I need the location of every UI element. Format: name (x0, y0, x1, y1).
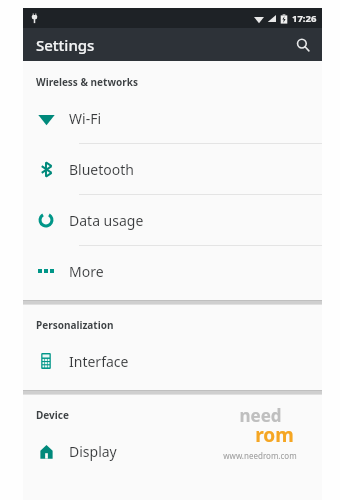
button[interactable]: Search (288, 30, 318, 60)
staticText: Wi-Fi (69, 109, 102, 128)
staticText: Display (69, 442, 117, 461)
button[interactable]: More (23, 246, 322, 296)
button[interactable]: Display (23, 426, 322, 476)
staticText: need (239, 404, 282, 427)
staticText: rom (255, 422, 294, 448)
button[interactable]: Bluetooth (23, 144, 322, 194)
staticText: www.needrom.com (223, 450, 297, 461)
staticText: Personalization (36, 318, 114, 332)
staticText: Device (36, 408, 69, 422)
button[interactable]: Interface (23, 336, 322, 386)
staticText: Interface (69, 352, 129, 371)
staticText: 17:26 (292, 12, 317, 25)
staticText: More (69, 262, 104, 281)
button[interactable]: Wi-Fi (23, 93, 322, 143)
staticText: Settings (36, 35, 95, 55)
button[interactable]: Data usage (23, 195, 322, 245)
staticText: Bluetooth (69, 160, 134, 179)
staticText: Wireless & networks (36, 75, 138, 89)
staticText: Data usage (69, 211, 144, 230)
